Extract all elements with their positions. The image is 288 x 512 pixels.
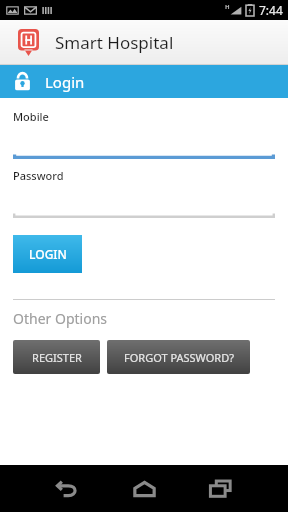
staticText: Other Options	[13, 309, 107, 328]
staticText: Login	[45, 72, 85, 92]
staticText: Password	[13, 168, 64, 183]
button[interactable]	[13, 212, 275, 218]
staticText: LOGIN	[29, 246, 67, 262]
staticText: 7:44	[259, 2, 283, 18]
button[interactable]: Home	[106, 465, 182, 512]
button[interactable]: Back	[30, 465, 106, 512]
button[interactable]: FORGOT PASSWORD?	[107, 340, 250, 374]
staticText: Smart Hospital	[55, 31, 174, 54]
button[interactable]: LOGIN	[13, 235, 82, 273]
staticText: FORGOT PASSWORD?	[124, 350, 234, 365]
button[interactable]: REGISTER	[13, 340, 100, 374]
staticText: REGISTER	[32, 350, 82, 365]
other: Smart Hospital logo	[18, 29, 39, 56]
staticText: Mobile	[13, 109, 49, 124]
staticText: H	[225, 3, 230, 11]
button[interactable]	[13, 153, 275, 159]
button[interactable]: Recent apps	[182, 465, 258, 512]
